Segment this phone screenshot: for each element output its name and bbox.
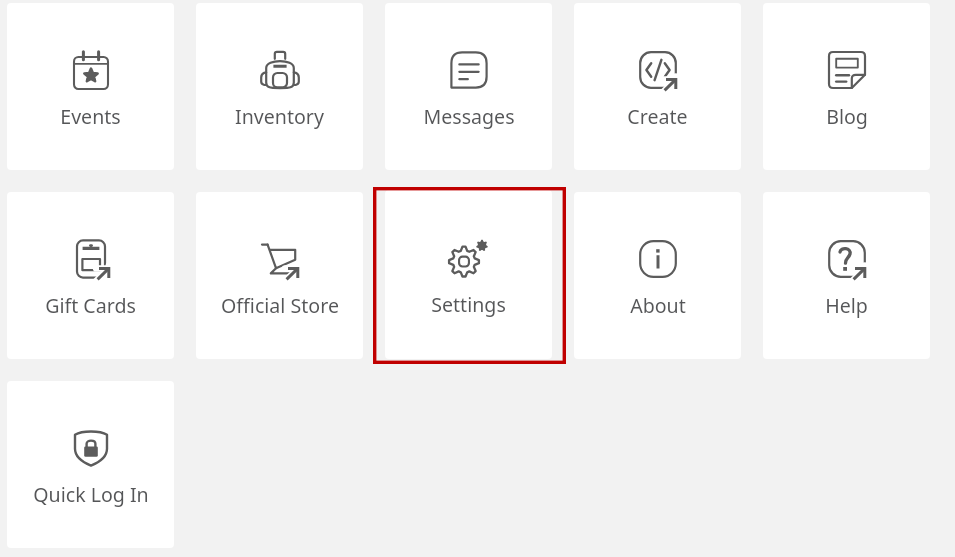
staticText: Settings [431, 291, 506, 318]
staticText: Messages [423, 103, 515, 130]
staticText: Create [627, 103, 688, 130]
button[interactable]: Blog [763, 3, 930, 170]
button[interactable]: Help [763, 192, 930, 359]
staticText: Official Store [221, 292, 339, 319]
staticText: Inventory [235, 103, 324, 130]
staticText: About [630, 292, 686, 319]
button[interactable]: Messages [385, 3, 552, 170]
staticText: Gift Cards [45, 292, 136, 319]
button[interactable]: Official Store [196, 192, 363, 359]
button[interactable]: Inventory [196, 3, 363, 170]
button[interactable]: Events [7, 3, 174, 170]
staticText: Help [825, 292, 868, 319]
button[interactable]: About [574, 192, 741, 359]
button[interactable]: Create [574, 3, 741, 170]
staticText: Blog [826, 103, 868, 130]
button[interactable]: Quick Log In [7, 381, 174, 548]
button[interactable]: Gift Cards [7, 192, 174, 359]
staticText: Events [60, 103, 121, 130]
staticText: Quick Log In [33, 481, 149, 508]
button[interactable]: Settings [385, 190, 552, 359]
